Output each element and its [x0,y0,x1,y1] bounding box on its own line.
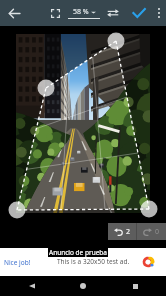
staticText: 2 [126,227,131,237]
button[interactable]: 2 [108,223,136,240]
button[interactable]: AdMob [142,256,154,268]
staticText: Anuncio de prueba [49,248,107,257]
staticText: 0 [155,227,160,237]
button[interactable]: 58 % [68,7,100,19]
button[interactable]: Home [63,276,103,296]
staticText: 58 % [73,7,89,17]
button[interactable]: Back [12,276,52,296]
button[interactable]: Recent apps [115,276,155,296]
button[interactable]: 0 [137,223,166,240]
button[interactable]: Fit to screen [45,0,65,26]
staticText: This is a 320x50 test ad. [57,257,130,266]
button[interactable]: Flip horizontally [100,0,126,26]
button[interactable]: Back [0,0,28,26]
button[interactable]: More options [152,0,166,26]
button[interactable]: Done [126,0,152,26]
button[interactable]: Nice job! [4,258,31,267]
